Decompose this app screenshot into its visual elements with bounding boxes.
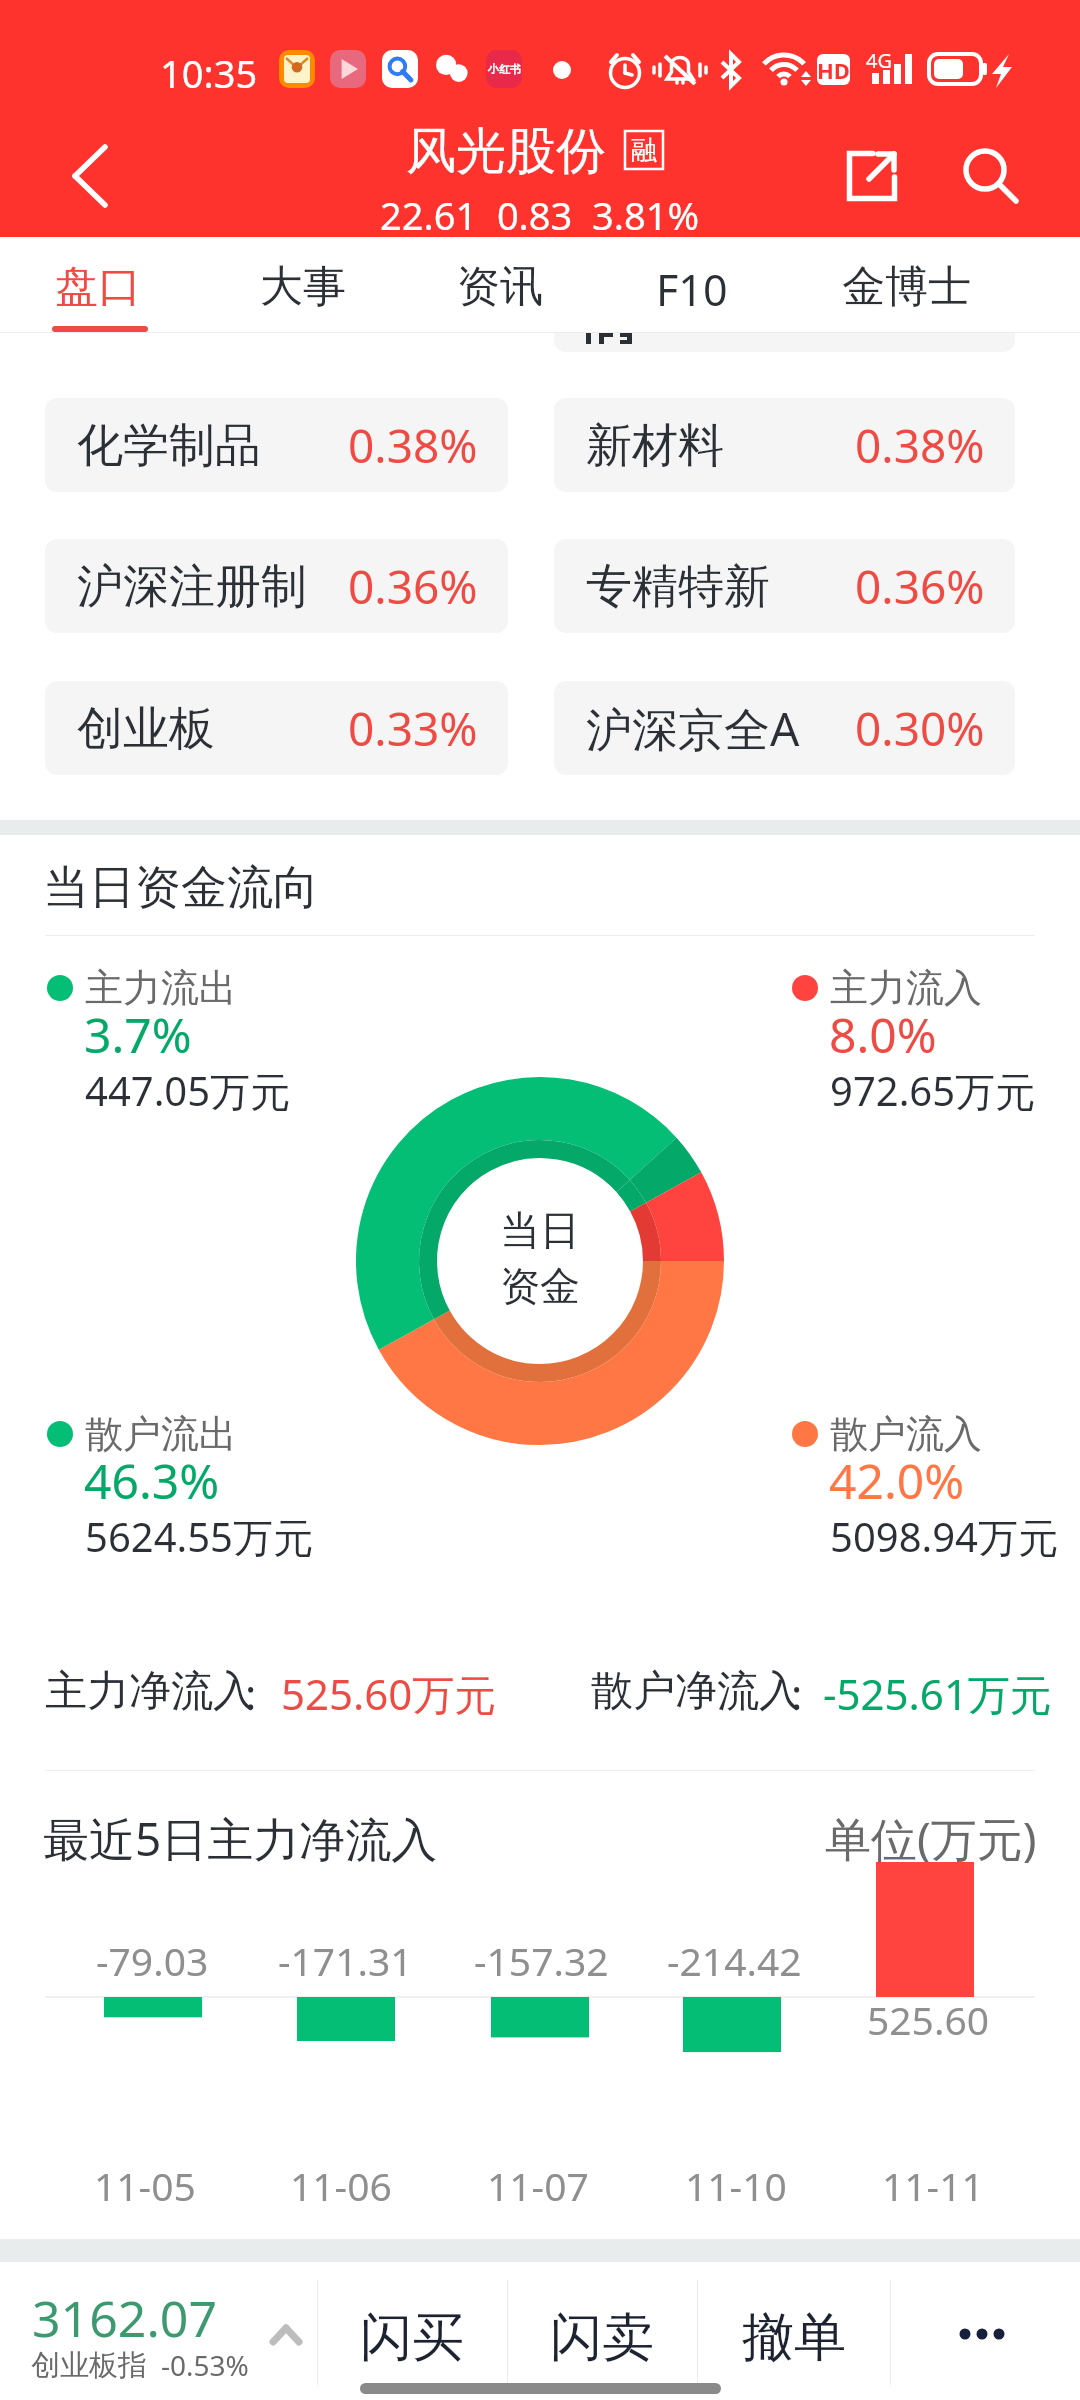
staticText: 主力净流入 (45, 1665, 255, 1718)
staticText: 42.0% (829, 1448, 965, 1513)
staticText: 新材料 (586, 417, 724, 475)
staticText: 大事 (260, 260, 346, 314)
staticText: 当日资金流向 (43, 859, 319, 917)
staticText: 盘口 (55, 260, 141, 314)
button[interactable]: Back (20, 110, 160, 237)
button[interactable]: 大事 (203, 237, 403, 333)
staticText: 4G (866, 47, 892, 74)
staticText: 风光股份 (406, 120, 606, 183)
staticText: 11-06 (290, 2159, 392, 2212)
staticText: 沪深京全A (586, 697, 800, 760)
staticText: 3162.07 (32, 2284, 217, 2352)
staticText: 11-10 (685, 2159, 787, 2212)
staticText: 单位(万元) (825, 1807, 1037, 1870)
staticText: 专精特新 (586, 558, 770, 616)
staticText: 525.60 (867, 1993, 989, 2046)
button[interactable]: 盘口 (0, 237, 198, 333)
staticText: -171.31 (278, 1934, 413, 1987)
staticText: -214.42 (667, 1934, 802, 1987)
button[interactable]: 3162.07 (0, 2262, 316, 2400)
button[interactable]: 专精特新 (554, 539, 1015, 633)
staticText: 0.38% (348, 414, 478, 477)
staticText: 主力流入 (830, 964, 982, 1012)
staticText: 融 (631, 134, 657, 167)
staticText: 资讯 (457, 260, 543, 314)
staticText: 化学制品 (77, 417, 261, 475)
staticText: 当日 (500, 1205, 580, 1255)
staticText: 8.0% (829, 1002, 937, 1067)
staticText: 0.36% (348, 555, 478, 618)
staticText: : (791, 1665, 803, 1722)
staticText: 11-07 (487, 2159, 589, 2212)
staticText: 小红书 (488, 62, 521, 76)
staticText: -525.61万元 (823, 1665, 1052, 1722)
staticText: HD (817, 55, 850, 85)
staticText: 主力流出 (85, 964, 237, 1012)
button[interactable]: 化学制品 (45, 398, 508, 492)
staticText: 525.60万元 (281, 1665, 497, 1722)
staticText: 0.38% (855, 414, 985, 477)
button[interactable]: 沪深京全A (554, 681, 1015, 775)
staticText: 最近5日主力净流入 (43, 1807, 438, 1870)
staticText: 创业板 (77, 700, 215, 758)
staticText: -157.32 (474, 1934, 609, 1987)
staticText: -79.03 (96, 1934, 209, 1987)
staticText: 撤单 (742, 2305, 846, 2365)
staticText: 闪买 (360, 2305, 464, 2365)
button[interactable]: 闪买 (317, 2262, 507, 2400)
staticText: 散户流出 (85, 1410, 237, 1458)
button[interactable]: Share (811, 110, 931, 237)
staticText: 散户流入 (830, 1410, 982, 1458)
staticText: 11-05 (94, 2159, 196, 2212)
staticText: 5098.94万元 (830, 1509, 1058, 1564)
staticText: 沪深注册制 (77, 558, 307, 616)
staticText: 3.7% (84, 1002, 192, 1067)
staticText: 0.30% (855, 697, 985, 760)
staticText: 金博士 (842, 260, 971, 314)
button[interactable]: 金博士 (806, 237, 1006, 333)
button[interactable]: 新材料 (554, 398, 1015, 492)
button[interactable]: 创业板 (45, 681, 508, 775)
staticText: 0.33% (348, 697, 478, 760)
button[interactable]: 闪卖 (507, 2262, 697, 2400)
staticText: -0.53% (161, 2346, 249, 2384)
staticText: 0.36% (855, 555, 985, 618)
button[interactable]: F10 (592, 237, 792, 333)
button[interactable]: 撤单 (697, 2262, 890, 2400)
staticText: 22.61 0.83 3.81% (380, 189, 700, 241)
staticText: F10 (656, 260, 728, 314)
staticText: 46.3% (84, 1448, 220, 1513)
staticText: : (245, 1665, 257, 1722)
button[interactable]: 沪深注册制 (45, 539, 508, 633)
button[interactable]: Search (934, 110, 1064, 237)
staticText: 10:35 (160, 47, 258, 99)
staticText: 5624.55万元 (85, 1509, 313, 1564)
staticText: 创业板指 (31, 2347, 147, 2384)
staticText: 447.05万元 (85, 1063, 291, 1118)
staticText: 闪卖 (550, 2305, 654, 2365)
button[interactable]: 资讯 (400, 237, 600, 333)
button[interactable]: More options (890, 2262, 1080, 2400)
staticText: 资金 (500, 1261, 580, 1311)
staticText: 972.65万元 (830, 1063, 1036, 1118)
staticText: 11-11 (882, 2159, 984, 2212)
staticText: 散户净流入 (591, 1665, 801, 1718)
